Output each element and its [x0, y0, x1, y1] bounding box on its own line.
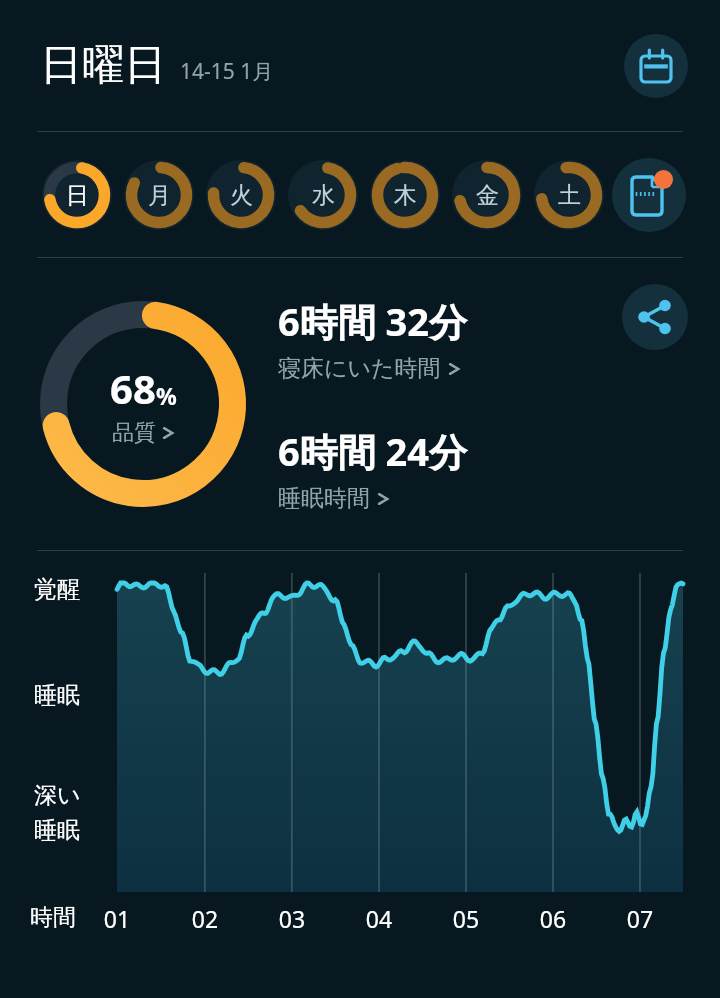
button[interactable]: 火: [200, 154, 282, 236]
staticText: 04: [357, 903, 401, 934]
staticText: %: [156, 380, 177, 411]
staticText: 05: [444, 903, 488, 934]
staticText: 07: [618, 903, 662, 934]
staticText: 01: [95, 903, 139, 934]
staticText: 深い: [34, 781, 81, 810]
staticText: 水: [312, 181, 335, 210]
button[interactable]: Share: [622, 284, 688, 350]
staticText: 02: [183, 903, 227, 934]
staticText: 覚醒: [34, 575, 80, 604]
staticText: 日: [66, 181, 89, 210]
staticText: 06: [531, 903, 575, 934]
button[interactable]: 月: [118, 154, 200, 236]
staticText: 睡眠時間: [278, 484, 370, 513]
button[interactable]: 金: [446, 154, 528, 236]
staticText: 木: [394, 181, 417, 210]
staticText: 月: [148, 181, 171, 210]
button[interactable]: 土: [528, 154, 610, 236]
staticText: 火: [230, 181, 253, 210]
staticText: 日曜日: [40, 39, 166, 92]
button[interactable]: Calendar: [624, 34, 688, 98]
staticText: 6時間 24分: [278, 425, 468, 477]
staticText: 金: [476, 181, 499, 210]
button[interactable]: 68: [35, 296, 251, 512]
button[interactable]: 日: [36, 154, 118, 236]
staticText: 寝床にいた時間: [278, 354, 441, 383]
button[interactable]: Sleep notes: [612, 158, 686, 232]
button[interactable]: 6時間 32分: [278, 295, 468, 383]
staticText: 睡眠: [34, 681, 80, 710]
button[interactable]: 木: [364, 154, 446, 236]
staticText: 時間: [30, 903, 76, 932]
staticText: 土: [558, 181, 581, 210]
button[interactable]: 6時間 24分: [278, 425, 468, 513]
staticText: 睡眠: [34, 816, 80, 845]
staticText: 品質: [112, 419, 156, 447]
staticText: 68: [110, 361, 156, 415]
button[interactable]: 水: [282, 154, 364, 236]
staticText: 14-15 1月: [180, 57, 274, 86]
staticText: 03: [270, 903, 314, 934]
staticText: 6時間 32分: [278, 295, 468, 347]
